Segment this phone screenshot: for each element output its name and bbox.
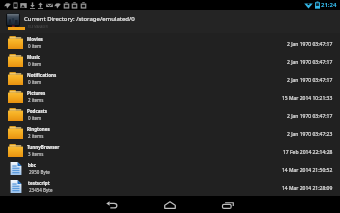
button[interactable]: Music <box>0 51 340 69</box>
staticText: Podcasts <box>27 108 47 114</box>
staticText: 0 item <box>28 115 42 121</box>
staticText: 2 Jan 1970 03:47:17 <box>287 59 333 66</box>
staticText: Current Directory: /storage/emulated/0 <box>24 15 135 23</box>
staticText: 0 item <box>28 43 42 49</box>
staticText: bbc <box>28 162 37 168</box>
staticText: Movies <box>27 36 43 42</box>
button[interactable]: Ringtones <box>0 123 340 141</box>
staticText: 2950 Byte <box>29 169 50 175</box>
staticText: 21:24 <box>321 1 337 9</box>
button[interactable]: Back <box>84 196 140 213</box>
button[interactable]: Notifications <box>0 69 340 87</box>
staticText: 0 item <box>28 61 42 67</box>
staticText: FILE MANAGER <box>28 25 48 29</box>
staticText: 15 Mar 2014 10:21:33 <box>282 95 333 102</box>
staticText: 2 Jan 1970 03:47:17 <box>287 77 333 84</box>
staticText: 14 Mar 2014 21:50:52 <box>282 167 333 174</box>
staticText: Music <box>27 54 41 60</box>
staticText: 17 Feb 2014 22:14:28 <box>283 149 333 156</box>
button[interactable]: Home <box>142 196 198 213</box>
staticText: 3 items <box>28 151 44 157</box>
staticText: Pictures <box>27 90 46 96</box>
button[interactable]: testscript <box>0 177 340 195</box>
button[interactable]: Movies <box>0 33 340 51</box>
staticText: TunnyBrowser <box>27 144 60 150</box>
staticText: 2 Jan 1970 03:47:17 <box>287 41 333 48</box>
staticText: Notifications <box>27 72 57 78</box>
button[interactable]: Recent apps <box>200 196 256 213</box>
button[interactable]: bbc <box>0 159 340 177</box>
staticText: 23454 Byte <box>29 187 53 193</box>
staticText: 2 Jan 1970 03:47:17 <box>287 113 333 120</box>
button[interactable]: Pictures <box>0 87 340 105</box>
button[interactable]: Podcasts <box>0 105 340 123</box>
staticText: 2 items <box>28 97 44 103</box>
staticText: Ringtones <box>27 126 50 132</box>
staticText: testscript <box>28 180 50 186</box>
staticText: 2 items <box>28 133 44 139</box>
button[interactable]: TunnyBrowser <box>0 141 340 159</box>
staticText: 0 item <box>28 79 42 85</box>
staticText: 2 Jan 1970 03:47:23 <box>287 131 333 138</box>
staticText: 14 Mar 2014 21:28:09 <box>282 185 333 192</box>
